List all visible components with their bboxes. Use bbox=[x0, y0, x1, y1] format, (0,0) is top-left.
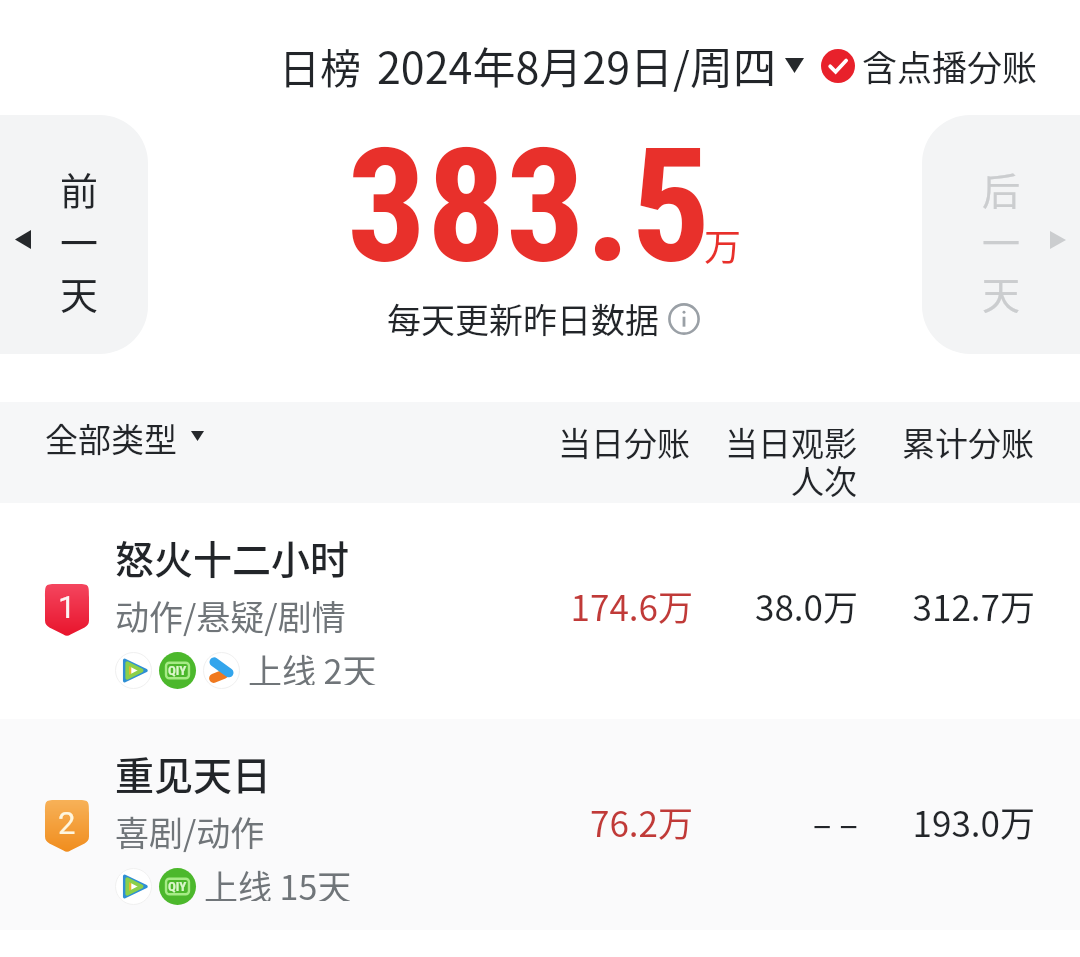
staticText: 上线 2天 bbox=[248, 645, 377, 685]
button[interactable]: 1 bbox=[0, 503, 1080, 720]
staticText: 重见天日 bbox=[115, 745, 272, 801]
staticText: 每天更新昨日数据 bbox=[387, 294, 659, 343]
button[interactable]: 每天更新昨日数据 bbox=[387, 294, 700, 343]
staticText: 383.5 bbox=[347, 114, 711, 298]
staticText: 一 bbox=[60, 213, 99, 268]
staticText: 喜剧/动作 bbox=[115, 807, 265, 856]
staticText: 当日分账 bbox=[510, 418, 690, 466]
staticText: 当日观影 人次 bbox=[677, 418, 857, 504]
button[interactable]: 含点播分账 bbox=[821, 40, 1038, 91]
staticText: 2 bbox=[58, 805, 76, 841]
staticText: – – bbox=[678, 796, 858, 847]
button[interactable]: 2 bbox=[0, 719, 1080, 936]
staticText: 日榜 bbox=[279, 36, 361, 95]
staticText: 天 bbox=[60, 265, 99, 320]
staticText: 前 bbox=[60, 161, 99, 216]
staticText: 怒火十二小时 bbox=[115, 529, 350, 585]
staticText: 一 bbox=[982, 213, 1021, 268]
staticText: 38.0万 bbox=[678, 580, 858, 631]
staticText: 动作/悬疑/剧情 bbox=[115, 591, 346, 640]
staticText: 万 bbox=[704, 218, 741, 272]
staticText: QIY bbox=[168, 663, 187, 678]
staticText: 1 bbox=[58, 589, 76, 625]
button[interactable]: 全部类型 bbox=[45, 414, 204, 458]
staticText: 累计分账 bbox=[854, 418, 1034, 466]
staticText: 全部类型 bbox=[45, 414, 177, 458]
staticText: 193.0万 bbox=[855, 796, 1035, 847]
button[interactable]: 前一天 bbox=[0, 115, 148, 354]
staticText: QIY bbox=[168, 879, 187, 894]
staticText: 312.7万 bbox=[855, 580, 1035, 631]
staticText: 174.6万 bbox=[513, 580, 693, 631]
staticText: 76.2万 bbox=[513, 796, 693, 847]
staticText: 天 bbox=[982, 265, 1021, 320]
button[interactable]: 2024年8月29日/周四 bbox=[377, 34, 804, 96]
staticText: 后 bbox=[982, 161, 1021, 216]
staticText: 2024年8月29日/周四 bbox=[377, 34, 776, 96]
staticText: 上线 15天 bbox=[204, 861, 352, 901]
other: 后一天 bbox=[922, 115, 1080, 354]
staticText: 含点播分账 bbox=[862, 40, 1038, 91]
